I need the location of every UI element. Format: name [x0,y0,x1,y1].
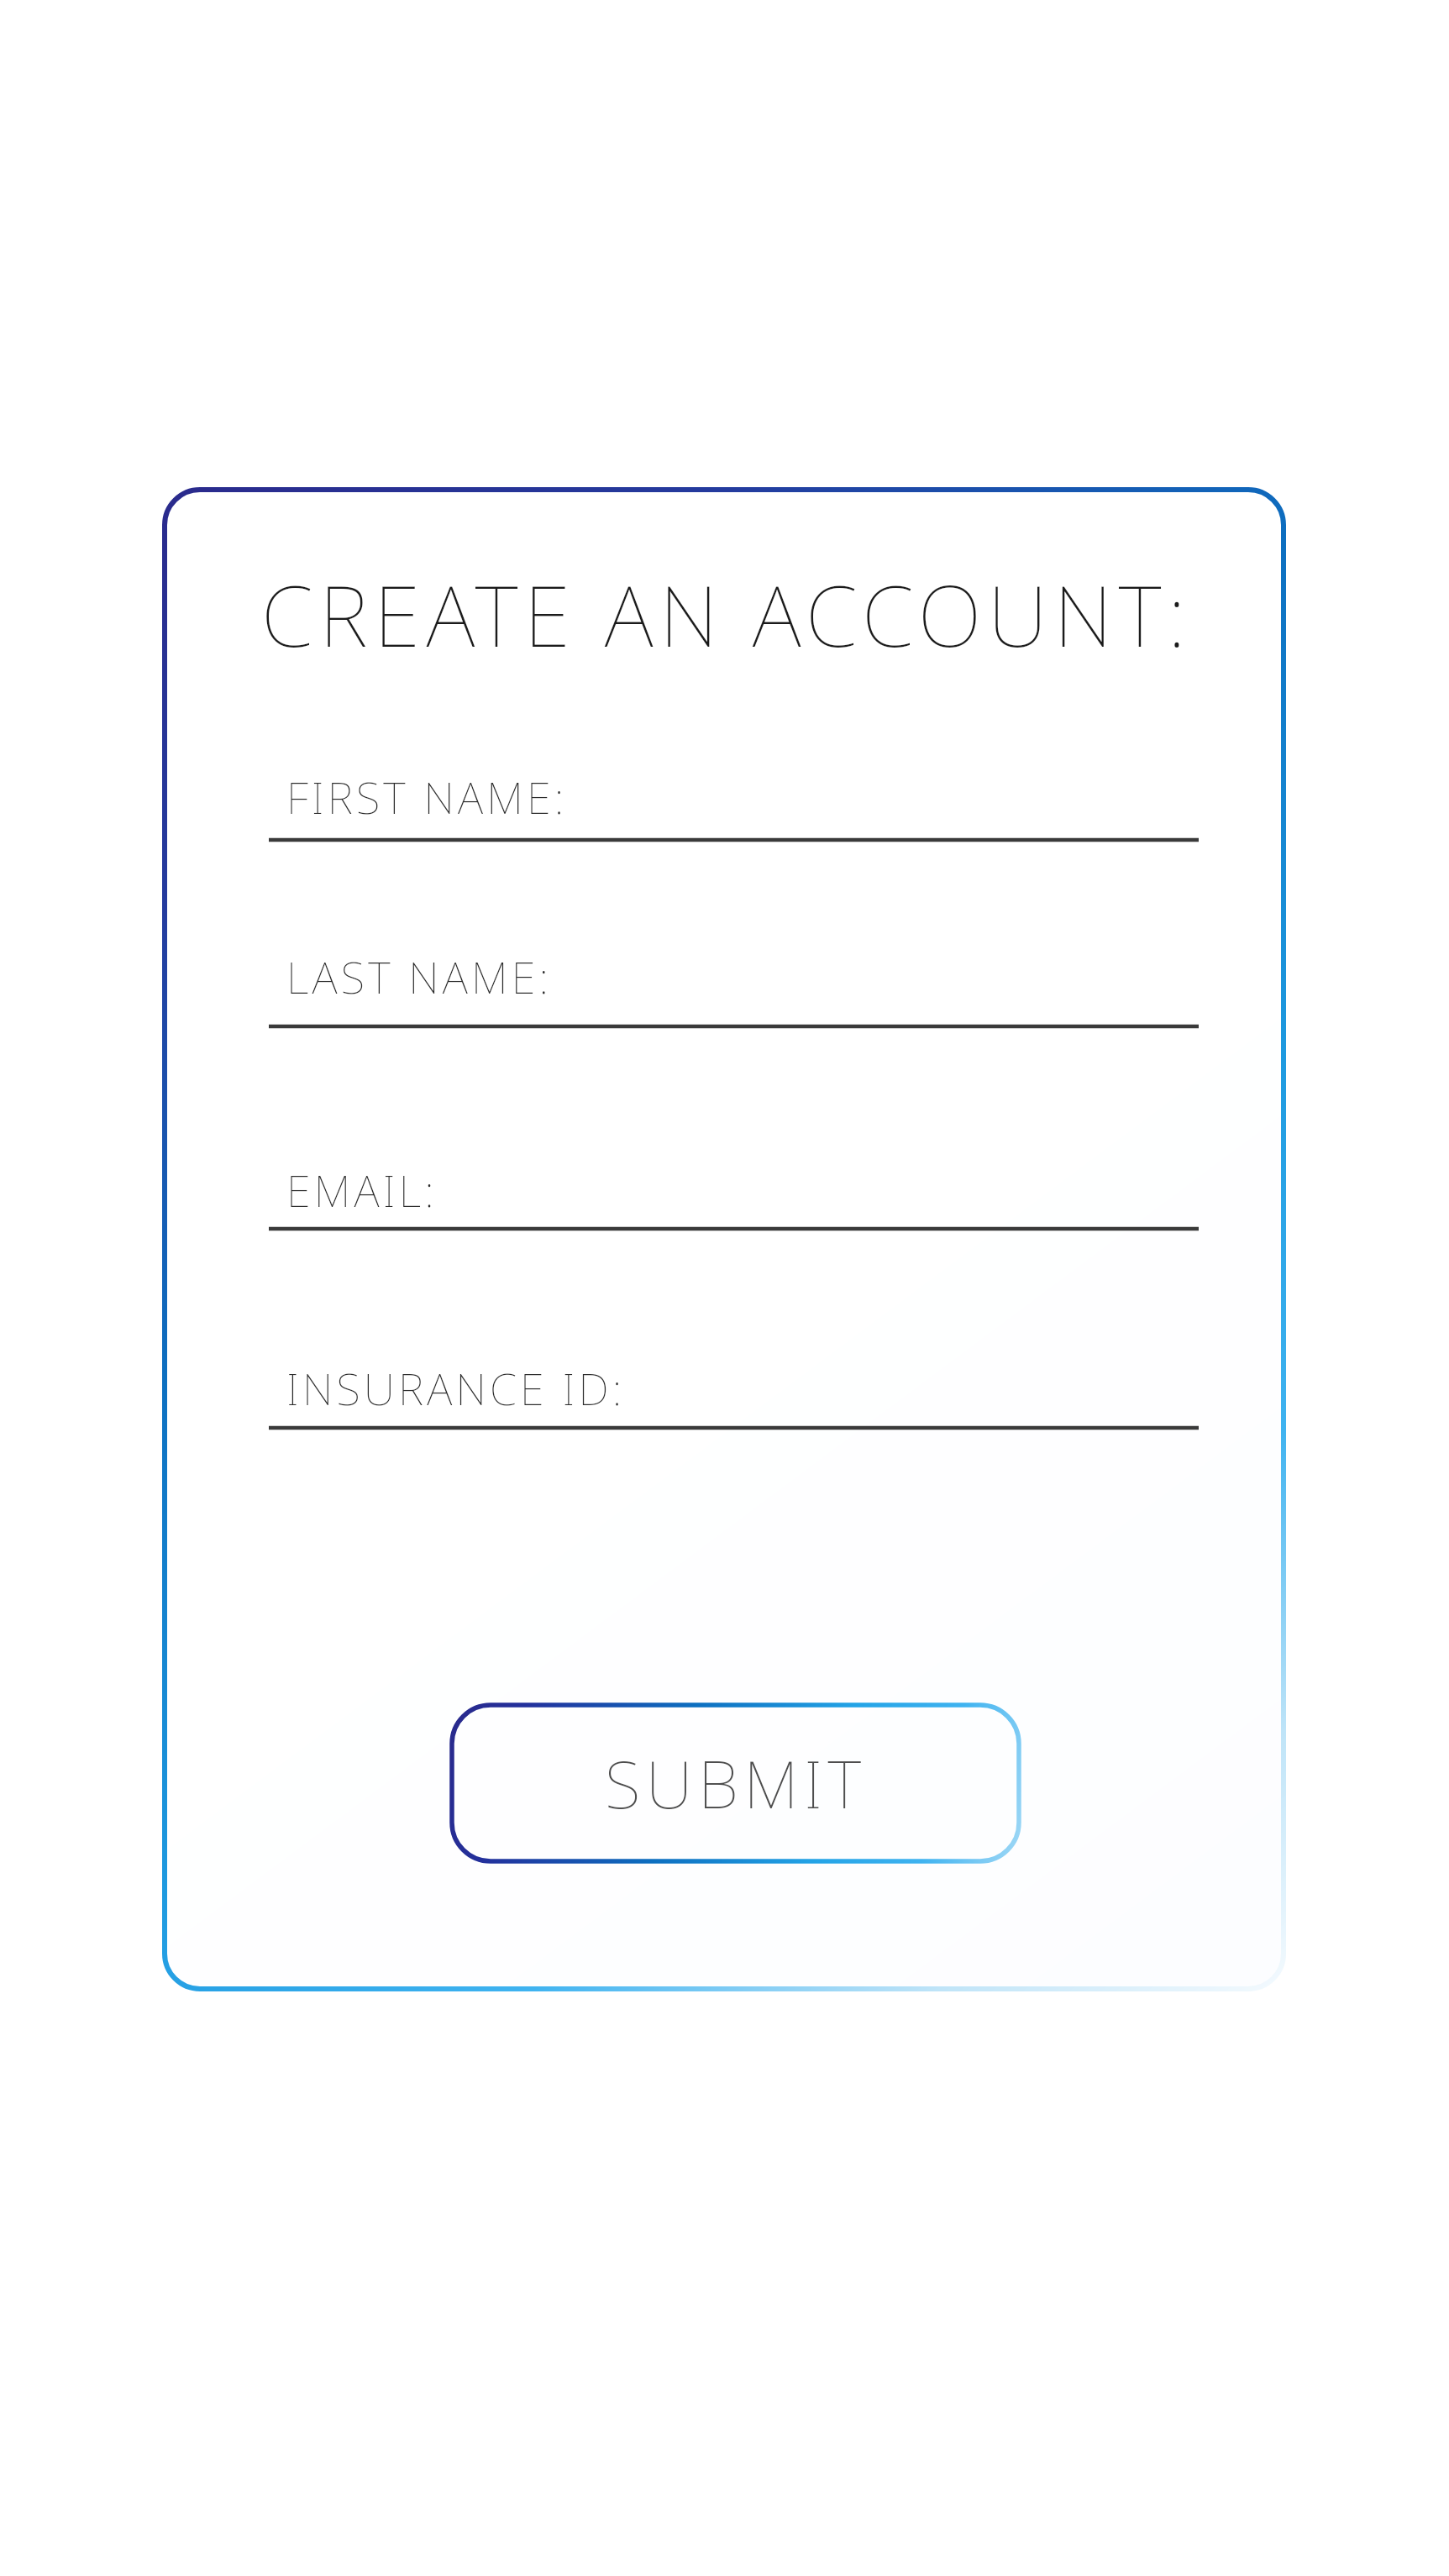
staticText: INSURANCE ID: [286,1358,626,1418]
button[interactable]: INSURANCE ID [269,1327,1199,1436]
staticText: LAST NAME: [286,947,553,1006]
staticText: CREATE AN ACCOUNT: [261,557,1193,671]
staticText: SUBMIT [605,1739,867,1828]
button[interactable]: LAST NAME [269,926,1199,1035]
staticText: EMAIL: [286,1160,438,1220]
staticText: FIRST NAME: [286,767,568,826]
button[interactable]: EMAIL [269,1128,1199,1237]
button[interactable]: FIRST NAME [269,739,1199,848]
button[interactable]: SUBMIT [452,1705,1019,1861]
